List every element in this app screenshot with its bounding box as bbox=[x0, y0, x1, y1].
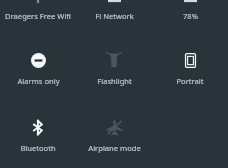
staticText: Portrait bbox=[176, 76, 204, 86]
button[interactable]: Wi-Fi bbox=[0, 0, 76, 21]
staticText: Draegers Free Wifi bbox=[5, 11, 71, 21]
button[interactable]: Bluetooth bbox=[0, 116, 76, 153]
button[interactable]: Battery bbox=[152, 0, 228, 21]
button[interactable]: Do not disturb, alarms only bbox=[0, 49, 76, 86]
button[interactable]: Flashlight bbox=[76, 49, 152, 86]
staticText: Airplane mode bbox=[88, 143, 141, 153]
button[interactable]: Screen rotation portrait bbox=[152, 49, 228, 86]
button[interactable]: Mobile network bbox=[76, 0, 152, 21]
staticText: Flashlight bbox=[97, 76, 132, 86]
staticText: Bluetooth bbox=[20, 143, 56, 153]
staticText: 78% bbox=[183, 11, 198, 21]
staticText: Alarms only bbox=[17, 76, 60, 86]
button[interactable]: Airplane mode bbox=[76, 116, 152, 153]
staticText: Fi Network bbox=[95, 11, 134, 21]
